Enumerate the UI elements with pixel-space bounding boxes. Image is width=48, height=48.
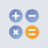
button[interactable]: Subtract — [25, 9, 39, 23]
button[interactable]: Multiply — [9, 25, 23, 39]
button[interactable]: Equals — [25, 25, 39, 39]
button[interactable]: Add — [9, 9, 23, 23]
